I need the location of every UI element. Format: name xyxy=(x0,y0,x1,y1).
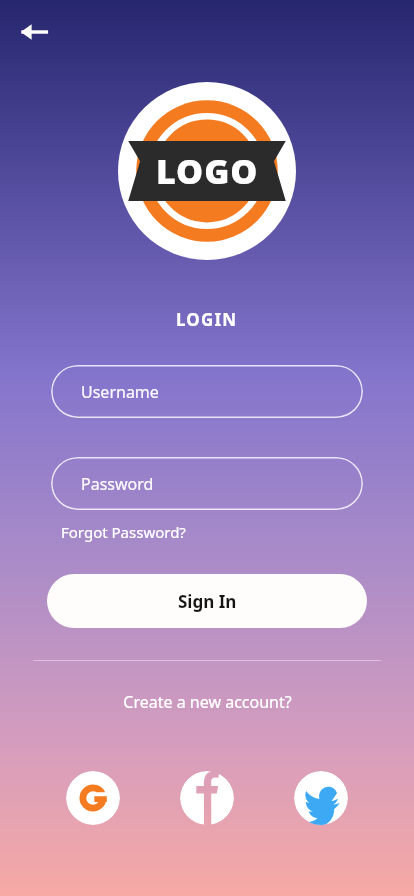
button[interactable]: Forgot Password? xyxy=(61,518,186,546)
staticText: LOGO xyxy=(156,148,259,194)
button[interactable]: Sign in with Twitter xyxy=(294,771,348,825)
staticText: Forgot Password? xyxy=(61,522,186,542)
button[interactable]: Create a new account? xyxy=(103,685,312,719)
button[interactable]: Password xyxy=(51,457,363,510)
staticText: Sign In xyxy=(178,590,237,613)
staticText: Password xyxy=(81,473,154,495)
button[interactable]: Back xyxy=(14,12,54,52)
button[interactable]: Sign in with Facebook xyxy=(180,771,234,825)
staticText: Create a new account? xyxy=(123,691,292,713)
staticText: LOGIN xyxy=(176,308,238,331)
staticText: Username xyxy=(81,381,159,403)
button[interactable]: Username xyxy=(51,365,363,418)
button[interactable]: Sign In xyxy=(47,574,367,628)
button[interactable]: Sign in with Google xyxy=(66,771,120,825)
